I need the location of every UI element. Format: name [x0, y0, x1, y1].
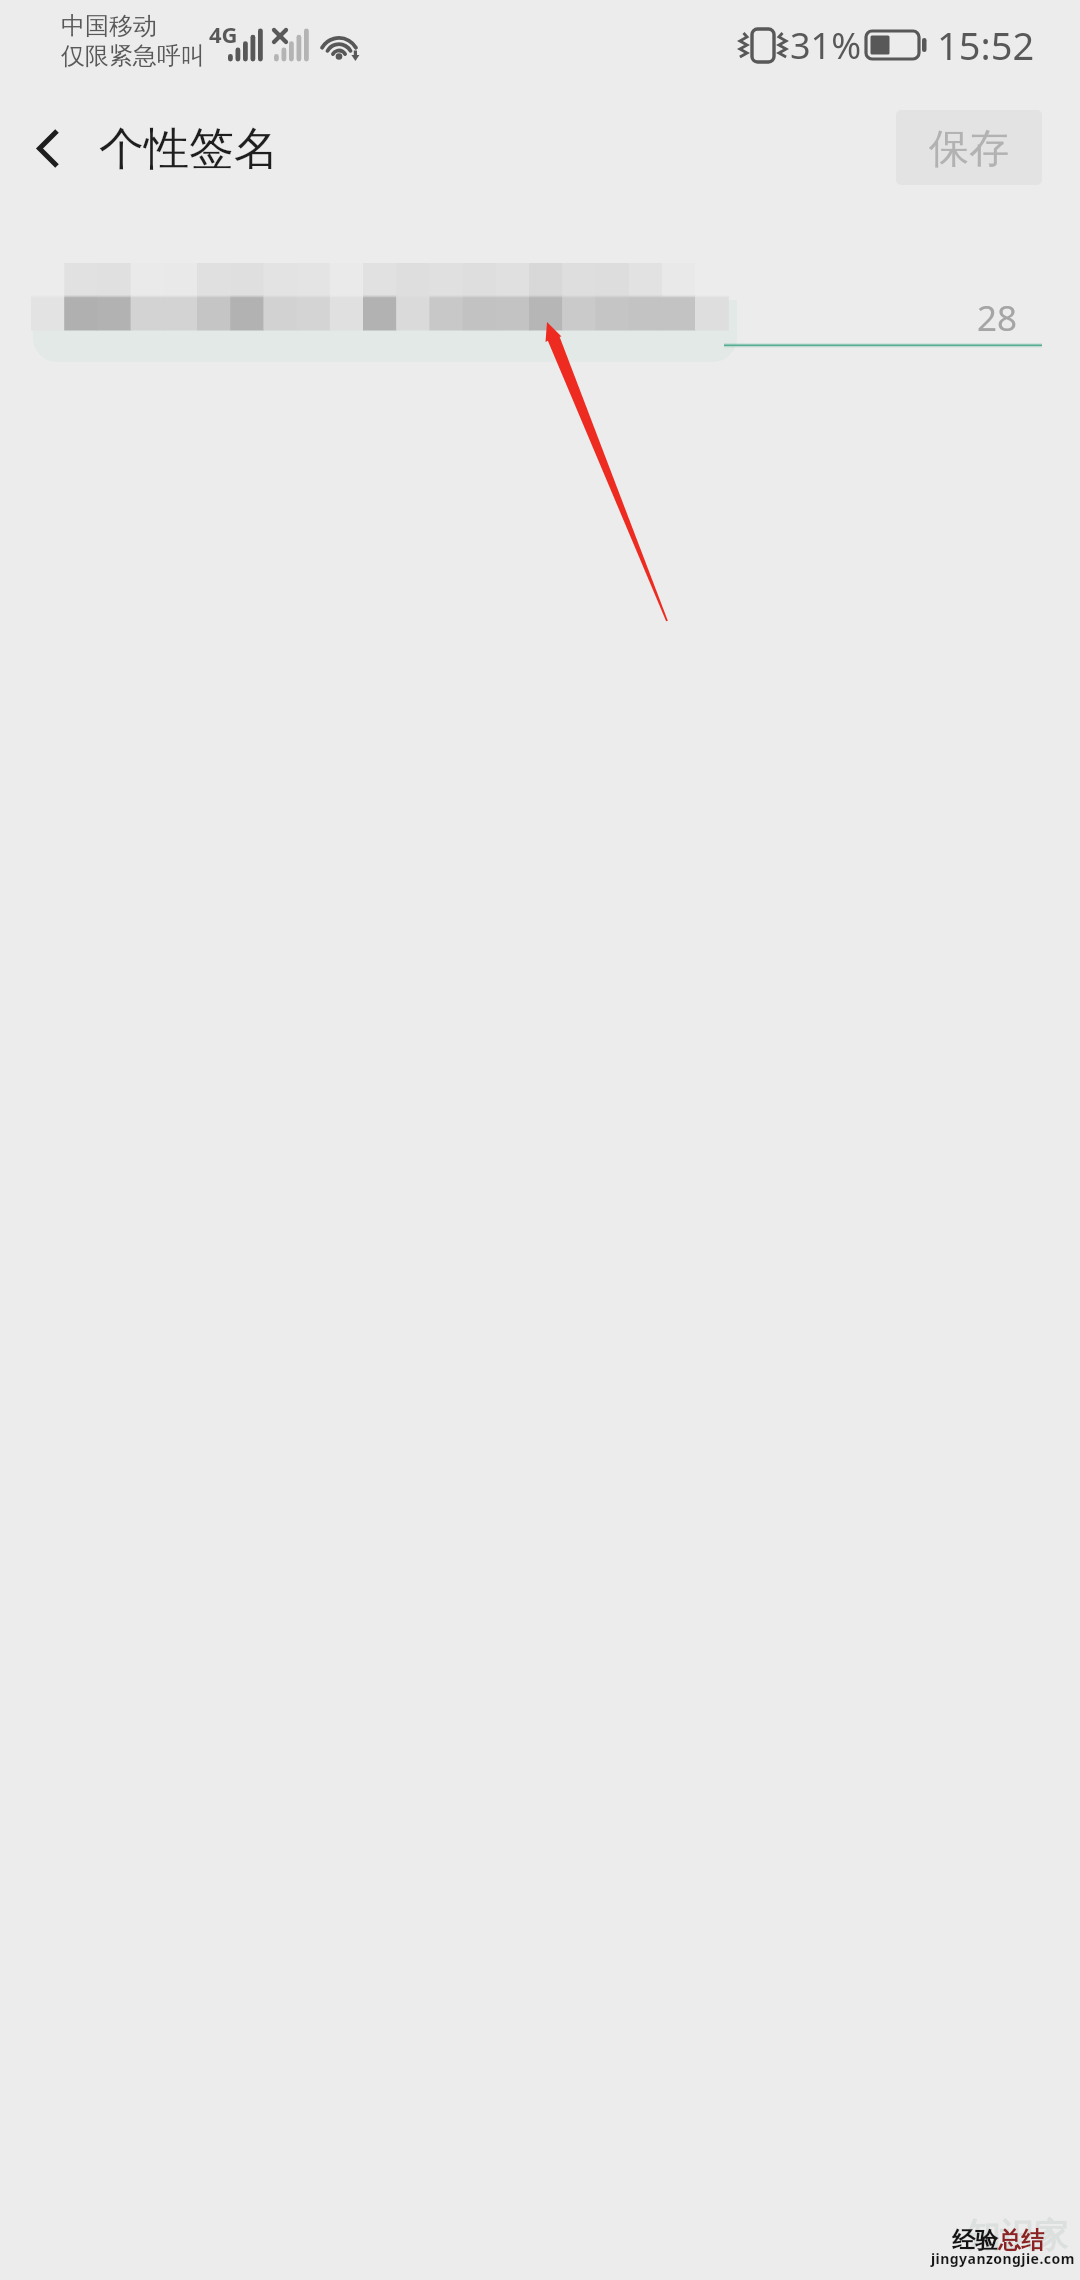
- staticText: 经验: [952, 2226, 998, 2255]
- staticText: 总结: [998, 2226, 1044, 2255]
- staticText: 31%: [790, 21, 862, 70]
- button[interactable]: Back: [12, 112, 86, 186]
- other: Annotation arrow: [0, 0, 1080, 2280]
- staticText: 个性签名: [99, 121, 279, 178]
- button[interactable]: Signature text field: [28, 250, 1042, 368]
- staticText: 保存: [929, 123, 1009, 173]
- staticText: 4G: [209, 19, 238, 49]
- staticText: 中国移动: [61, 11, 157, 41]
- button[interactable]: 保存: [896, 110, 1042, 185]
- staticText: 仅限紧急呼叫: [61, 41, 205, 71]
- staticText: 28: [977, 294, 1018, 342]
- staticText: 15:52: [937, 19, 1035, 71]
- staticText: jingyanzongjie.com: [931, 2249, 1075, 2268]
- staticText: 知识家: [966, 2214, 1068, 2257]
